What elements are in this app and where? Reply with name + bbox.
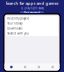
button[interactable]: Recently played [6,16,58,21]
staticText: Recently played [7,17,29,20]
staticText: Search for apps and games [5,1,58,6]
staticText: to play right away [20,6,43,10]
staticText: Downloads [7,27,22,30]
button[interactable]: Tab [32,63,46,70]
button[interactable]: Tab [46,63,60,70]
staticText: Shared with you [7,32,29,35]
button[interactable]: Shared with you [6,31,58,36]
button[interactable]: Tab [18,63,32,70]
button[interactable]: Your library [6,21,58,26]
button[interactable]: Tab [4,63,18,70]
button[interactable]: Get started [20,11,44,14]
staticText: Your library [7,22,22,25]
staticText: Get started [24,11,40,15]
button[interactable]: Downloads [6,26,58,31]
